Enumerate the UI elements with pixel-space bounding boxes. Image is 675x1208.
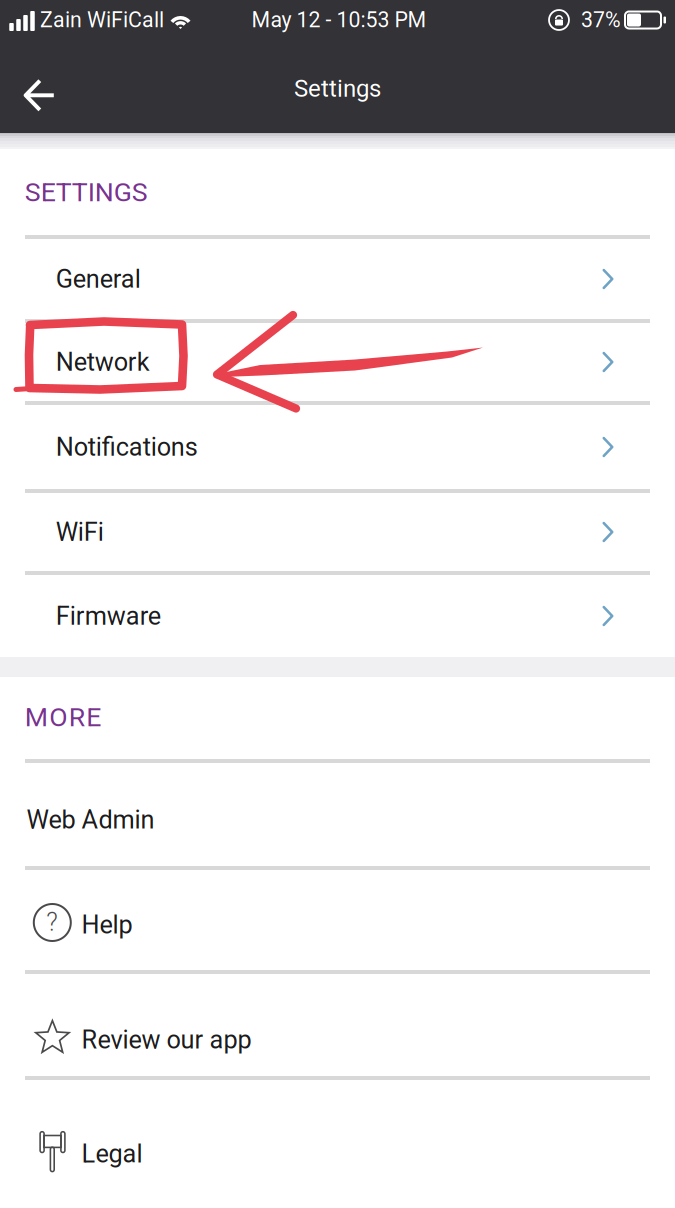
staticText: General [56,264,141,294]
staticText: Network [56,347,150,377]
button[interactable]: Web Admin [0,763,675,866]
button[interactable]: Back [0,56,74,122]
staticText: Review our app [81,1025,251,1055]
button[interactable]: General [0,239,675,319]
staticText: Web Admin [26,805,154,835]
button[interactable]: WiFi [0,493,675,571]
button[interactable]: Network [0,323,675,401]
staticText: Legal [81,1139,142,1169]
button[interactable]: Review our app [0,974,675,1076]
staticText: Firmware [56,601,161,631]
staticText: MORE [25,701,101,733]
button[interactable]: Firmware [0,575,675,657]
button[interactable]: Notifications [0,405,675,489]
staticText: SETTINGS [25,176,148,208]
staticText: Notifications [56,432,198,462]
staticText: May 12 - 10:53 PM [251,7,426,32]
staticText: 37% [581,7,621,32]
staticText: ? [46,907,58,937]
button[interactable]: ? [0,870,675,970]
staticText: Help [81,910,132,940]
staticText: WiFi [56,517,104,547]
staticText: Settings [294,74,381,102]
staticText: Zain WiFiCall [40,7,164,32]
button[interactable]: Legal [0,1080,675,1200]
